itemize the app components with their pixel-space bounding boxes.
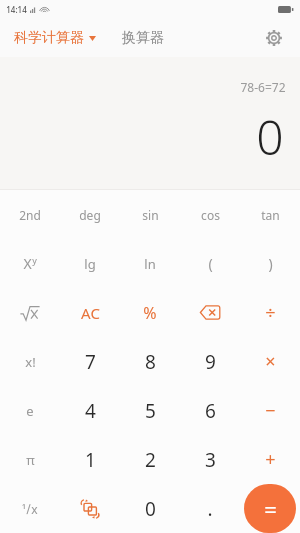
button[interactable]: + — [240, 435, 300, 484]
staticText: 0 — [256, 104, 284, 169]
staticText: 4 — [85, 398, 96, 424]
staticText: lg — [84, 255, 96, 273]
button[interactable]: 0 — [120, 484, 180, 533]
staticText: cos — [201, 207, 220, 223]
button[interactable]: lg — [60, 239, 120, 288]
button[interactable]: 7 — [60, 337, 120, 386]
button[interactable]: X — [0, 239, 60, 288]
staticText: . — [207, 496, 213, 522]
staticText: ) — [268, 254, 273, 273]
staticText: y — [32, 254, 37, 266]
staticText: + — [265, 447, 276, 472]
button[interactable]: 6 — [180, 386, 240, 435]
button[interactable]: π — [0, 435, 60, 484]
staticText: X — [23, 254, 32, 273]
button[interactable] — [0, 288, 60, 337]
staticText: x! — [25, 353, 36, 371]
button[interactable]: x! — [0, 337, 60, 386]
button[interactable]: ln — [120, 239, 180, 288]
button[interactable]: − — [240, 386, 300, 435]
button[interactable]: Equals — [240, 484, 300, 533]
button[interactable]: deg — [60, 190, 120, 239]
button[interactable]: Delete — [180, 288, 240, 337]
staticText: sin — [142, 207, 159, 223]
staticText: ln — [144, 255, 156, 273]
button[interactable]: 换算器 — [120, 25, 166, 51]
button[interactable]: ÷ — [240, 288, 300, 337]
staticText: 3 — [205, 447, 216, 473]
button[interactable]: 2 — [120, 435, 180, 484]
staticText: e — [26, 402, 34, 420]
staticText: − — [265, 398, 276, 423]
button[interactable]: % — [120, 288, 180, 337]
staticText: 科学计算器 — [14, 29, 84, 47]
button[interactable]: sin — [120, 190, 180, 239]
staticText: π — [26, 451, 35, 469]
staticText: 0 — [145, 496, 156, 522]
staticText: x — [31, 501, 38, 517]
button[interactable]: ¹ — [0, 484, 60, 533]
staticText: deg — [79, 207, 101, 223]
staticText: ÷ — [265, 300, 276, 325]
button[interactable]: 3 — [180, 435, 240, 484]
other: Equals — [244, 484, 296, 533]
staticText: 2nd — [19, 207, 41, 223]
button[interactable]: cos — [180, 190, 240, 239]
button[interactable]: 1 — [60, 435, 120, 484]
staticText: 78-6=72 — [240, 79, 286, 95]
button[interactable]: 4 — [60, 386, 120, 435]
button[interactable]: . — [180, 484, 240, 533]
staticText: 7 — [85, 349, 96, 375]
staticText: 9 — [205, 349, 216, 375]
staticText: × — [265, 349, 276, 374]
staticText: 1 — [85, 447, 96, 473]
staticText: 8 — [145, 349, 156, 375]
button[interactable]: 2nd — [0, 190, 60, 239]
staticText: 2 — [145, 447, 156, 473]
button[interactable]: ( — [180, 239, 240, 288]
staticText: = — [264, 494, 277, 524]
staticText: AC — [81, 303, 100, 323]
button[interactable]: 5 — [120, 386, 180, 435]
staticText: ¹ — [22, 502, 26, 517]
staticText: 14:14 — [6, 4, 27, 15]
button[interactable]: Convert — [60, 484, 120, 533]
button[interactable]: ) — [240, 239, 300, 288]
staticText: tan — [261, 207, 280, 223]
button[interactable]: Settings — [257, 21, 291, 55]
staticText: % — [143, 302, 157, 324]
button[interactable]: × — [240, 337, 300, 386]
button[interactable]: tan — [240, 190, 300, 239]
button[interactable]: e — [0, 386, 60, 435]
button[interactable]: AC — [60, 288, 120, 337]
staticText: 5 — [145, 398, 156, 424]
staticText: 换算器 — [122, 29, 164, 47]
staticText: ∕ — [26, 502, 31, 516]
button[interactable]: 科学计算器 — [12, 25, 98, 51]
button[interactable]: 8 — [120, 337, 180, 386]
staticText: ( — [208, 254, 213, 273]
button[interactable]: 9 — [180, 337, 240, 386]
staticText: 6 — [205, 398, 216, 424]
